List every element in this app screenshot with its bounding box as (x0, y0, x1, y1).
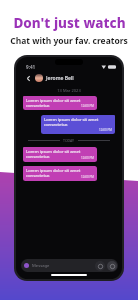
staticText: Lorem ipsum dolor sit amet consectetur. (26, 168, 94, 178)
button[interactable]: Message (21, 259, 118, 272)
staticText: 12:00 PM (81, 156, 94, 160)
button[interactable]: Lorem ipsum dolor sit amet consectetur. (23, 147, 97, 162)
button[interactable]: Back (25, 75, 32, 82)
button[interactable]: Emoji (95, 261, 105, 271)
staticText: Lorem ipsum dolor sit amet consectetur. (26, 98, 94, 108)
staticText: Don't just watch (13, 14, 126, 32)
button[interactable]: Lorem ipsum dolor sit amet consectetur. (23, 166, 97, 181)
staticText: 13 Mar 2023 (16, 88, 122, 93)
button[interactable]: Lorem ipsum dolor sit amet consectetur. (41, 115, 115, 134)
button[interactable]: Attach (107, 261, 117, 271)
staticText: Lorem ipsum dolor sit amet consectetur. (26, 149, 94, 159)
staticText: 12:00 PM (81, 175, 94, 179)
staticText: 12:00 PM (99, 128, 112, 132)
staticText: Message (32, 263, 50, 269)
staticText: Chat with your fav. creators (10, 35, 128, 47)
staticText: TODAY (63, 138, 75, 143)
staticText: Jerome Bell (46, 75, 74, 82)
staticText: 9:41 (26, 64, 36, 70)
button[interactable]: Lorem ipsum dolor sit amet consectetur. (23, 96, 97, 110)
staticText: 12:00 PM (81, 104, 94, 108)
staticText: Lorem ipsum dolor sit amet consectetur. (44, 117, 112, 127)
